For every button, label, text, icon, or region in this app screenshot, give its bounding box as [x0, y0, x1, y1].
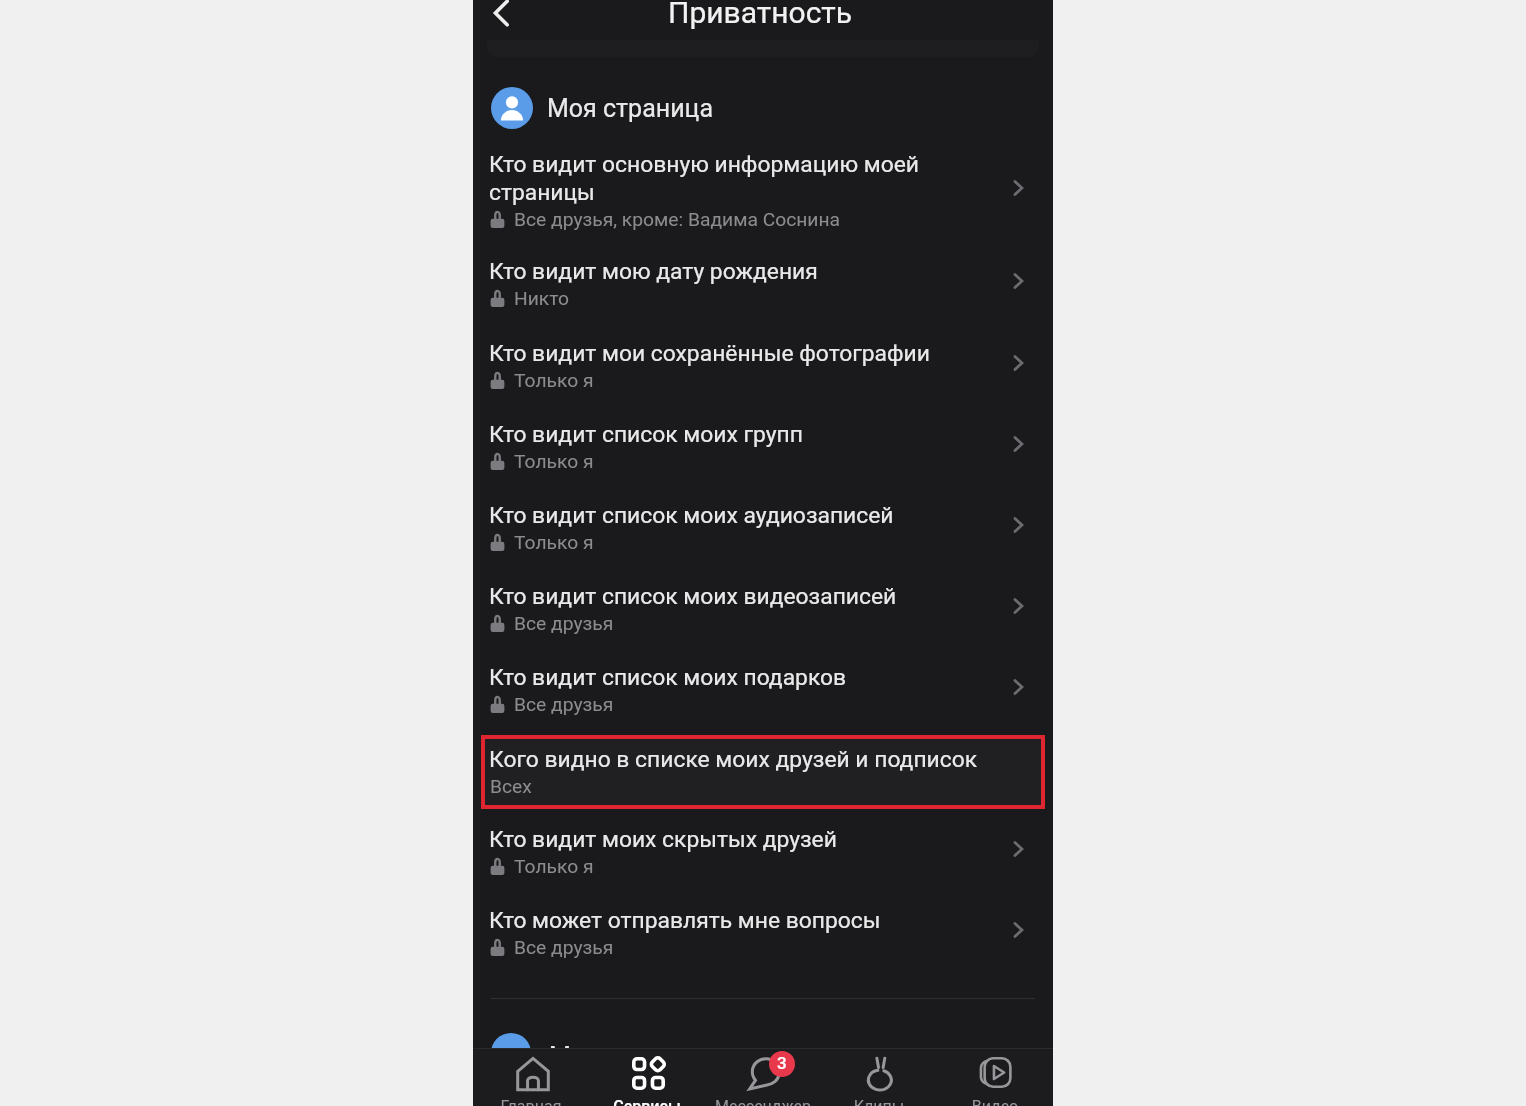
staticText: Кто видит список моих аудиозаписей: [489, 502, 894, 529]
staticText: Сервисы: [589, 1097, 705, 1106]
button[interactable]: Главная: [473, 1049, 589, 1106]
button[interactable]: Кто видит мою дату рождения: [481, 244, 1045, 318]
staticText: Никто: [514, 287, 570, 310]
staticText: Кто видит список моих видеозаписей: [489, 583, 897, 610]
button[interactable]: 3: [705, 1049, 821, 1106]
staticText: Все друзья: [514, 612, 614, 635]
button[interactable]: Кто видит список моих аудиозаписей: [481, 488, 1045, 562]
button[interactable]: Кого видно в списке моих друзей и подпис…: [481, 735, 1045, 809]
button[interactable]: Сервисы: [589, 1049, 705, 1106]
staticText: Только я: [514, 531, 594, 554]
staticText: Только я: [514, 369, 594, 392]
staticText: Кто может отправлять мне вопросы: [489, 907, 881, 934]
staticText: Только я: [514, 450, 594, 473]
staticText: Клипы: [821, 1097, 937, 1106]
button[interactable]: Кто видит основную информацию моей: [481, 137, 1045, 239]
button[interactable]: Кто видит моих скрытых друзей: [481, 812, 1045, 886]
staticText: Главная: [473, 1097, 589, 1106]
staticText: 3: [777, 1053, 787, 1073]
button[interactable]: Кто видит список моих групп: [481, 407, 1045, 481]
staticText: Моя страница: [547, 94, 714, 123]
staticText: Видео: [937, 1097, 1053, 1106]
button[interactable]: Кто видит список моих подарков: [481, 650, 1045, 724]
staticText: Только я: [514, 855, 594, 878]
staticText: Моя страница: [549, 1042, 716, 1071]
staticText: Кто видит мою дату рождения: [489, 258, 818, 285]
staticText: Все друзья, кроме: Вадима Соснина: [514, 208, 841, 231]
staticText: Кого видно в списке моих друзей и подпис…: [489, 746, 978, 773]
staticText: Кто видит основную информацию моей: [489, 151, 919, 178]
staticText: Всех: [490, 775, 532, 798]
staticText: страницы: [489, 179, 595, 206]
staticText: Приватность: [668, 0, 853, 30]
button[interactable]: Моя страница: [491, 87, 714, 129]
staticText: Все друзья: [514, 693, 614, 716]
staticText: Кто видит список моих подарков: [489, 664, 847, 691]
button[interactable]: Кто видит список моих видеозаписей: [481, 569, 1045, 643]
button[interactable]: Кто может отправлять мне вопросы: [481, 893, 1045, 967]
staticText: Мессенджер: [705, 1097, 821, 1106]
staticText: Кто видит мои сохранённые фотографии: [489, 340, 930, 367]
staticText: Кто видит моих скрытых друзей: [489, 826, 837, 853]
button[interactable]: Back: [478, 0, 524, 36]
staticText: Кто видит список моих групп: [489, 421, 803, 448]
button[interactable]: Кто видит мои сохранённые фотографии: [481, 326, 1045, 400]
button[interactable]: Видео: [937, 1049, 1053, 1106]
staticText: Все друзья: [514, 936, 614, 959]
button[interactable]: Клипы: [821, 1049, 937, 1106]
